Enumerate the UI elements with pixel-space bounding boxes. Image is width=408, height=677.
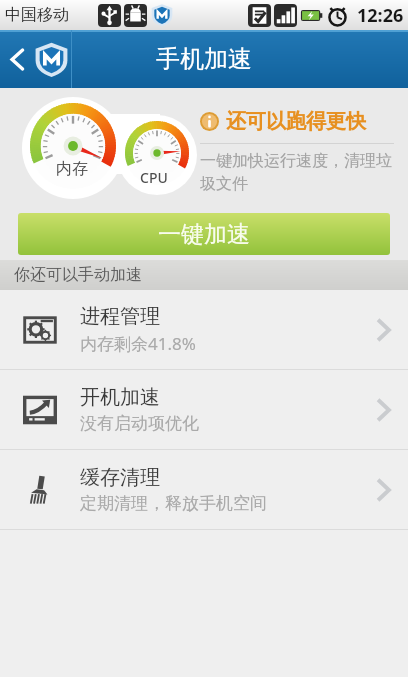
button[interactable]: 一键加速: [18, 213, 390, 255]
staticText: 缓存清理: [80, 465, 160, 490]
staticText: 一键加速: [158, 220, 250, 249]
staticText: 内存: [56, 159, 88, 179]
button[interactable]: 开机加速: [0, 370, 408, 449]
staticText: 中国移动: [5, 5, 69, 25]
button[interactable]: 缓存清理: [0, 450, 408, 529]
staticText: 你还可以手动加速: [14, 265, 142, 285]
staticText: 定期清理，释放手机空间: [80, 493, 267, 514]
staticText: 还可以跑得更快: [226, 109, 366, 134]
staticText: 开机加速: [80, 385, 160, 410]
staticText: 内存剩余41.8%: [80, 332, 196, 355]
staticText: 手机加速: [156, 44, 252, 74]
staticText: 一键加快运行速度，清理垃圾文件: [200, 151, 394, 194]
staticText: 进程管理: [80, 304, 160, 329]
staticText: CPU: [140, 168, 168, 187]
staticText: 没有启动项优化: [80, 413, 199, 434]
staticText: 12:26: [357, 3, 404, 28]
button[interactable]: Back: [0, 30, 84, 88]
button[interactable]: 进程管理: [0, 290, 408, 369]
